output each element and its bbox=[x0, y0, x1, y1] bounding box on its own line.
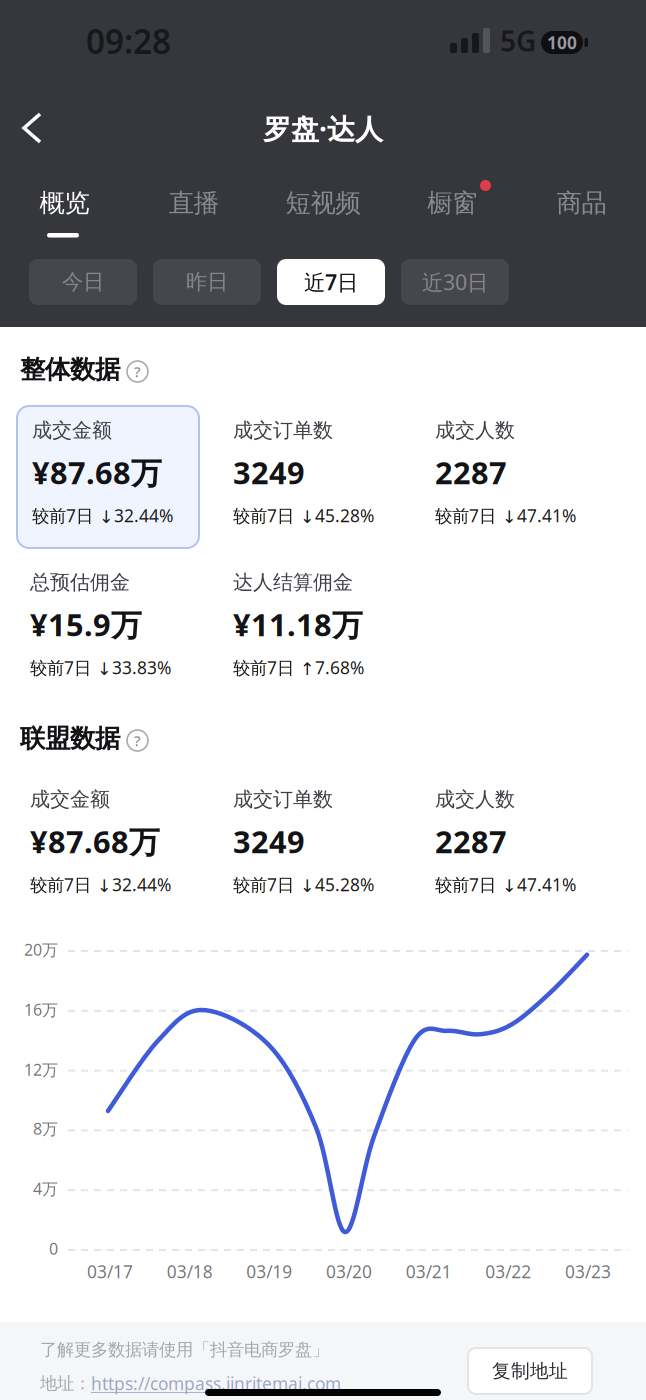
button[interactable]: 帮助 bbox=[126, 729, 149, 752]
button[interactable]: 成交金额 bbox=[17, 406, 199, 548]
staticText: ¥11.18万 bbox=[233, 604, 363, 645]
staticText: 较前7日 ↓45.28% bbox=[233, 504, 374, 527]
staticText: 成交订单数 bbox=[233, 787, 333, 812]
staticText: 联盟数据 bbox=[20, 723, 120, 754]
staticText: 03/19 bbox=[246, 1260, 292, 1283]
staticText: 罗盘·达人 bbox=[263, 110, 383, 147]
staticText: 2287 bbox=[435, 821, 507, 862]
staticText: 100 bbox=[547, 31, 577, 54]
staticText: 03/21 bbox=[406, 1260, 452, 1283]
staticText: 橱窗 bbox=[427, 187, 477, 218]
staticText: 成交订单数 bbox=[233, 418, 333, 443]
staticText: 较前7日 ↓33.83% bbox=[30, 656, 171, 679]
staticText: 短视频 bbox=[285, 187, 360, 218]
staticText: 03/22 bbox=[485, 1260, 531, 1283]
button[interactable]: 概览 bbox=[0, 177, 129, 229]
staticText: 商品 bbox=[556, 187, 606, 218]
staticText: 总预估佣金 bbox=[30, 570, 130, 595]
staticText: 直播 bbox=[169, 187, 219, 218]
staticText: 03/18 bbox=[167, 1260, 213, 1283]
staticText: 概览 bbox=[40, 187, 90, 218]
staticText: 12万 bbox=[24, 1059, 58, 1080]
staticText: 整体数据 bbox=[20, 354, 120, 385]
button[interactable]: 昨日 bbox=[153, 259, 261, 305]
staticText: 较前7日 ↓32.44% bbox=[32, 504, 173, 527]
staticText: 昨日 bbox=[186, 269, 228, 295]
staticText: 较前7日 ↓47.41% bbox=[435, 873, 576, 896]
staticText: 09:28 bbox=[86, 19, 171, 63]
staticText: ¥15.9万 bbox=[30, 604, 142, 645]
staticText: 03/17 bbox=[87, 1260, 133, 1283]
staticText: 成交金额 bbox=[32, 418, 112, 443]
staticText: 3249 bbox=[233, 821, 305, 862]
staticText: 成交人数 bbox=[435, 787, 515, 812]
staticText: 20万 bbox=[24, 939, 58, 960]
button[interactable]: 地址： bbox=[40, 1372, 341, 1395]
button[interactable]: 返回 bbox=[12, 106, 52, 150]
staticText: 16万 bbox=[24, 999, 58, 1020]
button[interactable]: 直播 bbox=[129, 177, 258, 229]
staticText: ? bbox=[134, 731, 141, 750]
staticText: 近30日 bbox=[422, 268, 488, 296]
button[interactable]: 今日 bbox=[29, 259, 137, 305]
staticText: 4万 bbox=[33, 1178, 58, 1199]
staticText: 8万 bbox=[33, 1118, 58, 1139]
staticText: 复制地址 bbox=[492, 1359, 568, 1382]
button[interactable]: 近30日 bbox=[401, 259, 509, 305]
button[interactable]: 短视频 bbox=[258, 177, 388, 229]
staticText: 较前7日 ↑7.68% bbox=[233, 656, 364, 679]
staticText: 03/20 bbox=[326, 1260, 372, 1283]
staticText: 较前7日 ↓45.28% bbox=[233, 873, 374, 896]
staticText: 成交金额 bbox=[30, 787, 110, 812]
staticText: 5G bbox=[500, 22, 536, 59]
staticText: 成交人数 bbox=[435, 418, 515, 443]
staticText: 3249 bbox=[233, 452, 305, 493]
staticText: 03/23 bbox=[565, 1260, 611, 1283]
button[interactable]: 复制地址 bbox=[468, 1348, 592, 1394]
button[interactable]: 近7日 bbox=[277, 259, 385, 305]
staticText: 达人结算佣金 bbox=[233, 570, 353, 595]
staticText: ? bbox=[134, 362, 141, 381]
staticText: ¥87.68万 bbox=[32, 452, 162, 493]
staticText: 较前7日 ↓47.41% bbox=[435, 504, 576, 527]
button[interactable]: 帮助 bbox=[126, 360, 149, 383]
button[interactable]: 商品 bbox=[517, 177, 646, 229]
staticText: 了解更多数据请使用「抖音电商罗盘」 bbox=[40, 1339, 329, 1360]
staticText: 近7日 bbox=[304, 268, 358, 296]
button[interactable]: 橱窗 bbox=[388, 177, 517, 229]
staticText: 2287 bbox=[435, 452, 507, 493]
staticText: https://compass.jinritemai.com bbox=[91, 1372, 341, 1395]
staticText: ¥87.68万 bbox=[30, 821, 160, 862]
staticText: 较前7日 ↓32.44% bbox=[30, 873, 171, 896]
staticText: 0 bbox=[49, 1238, 58, 1259]
staticText: 今日 bbox=[62, 269, 104, 295]
staticText: 地址： bbox=[40, 1373, 91, 1394]
